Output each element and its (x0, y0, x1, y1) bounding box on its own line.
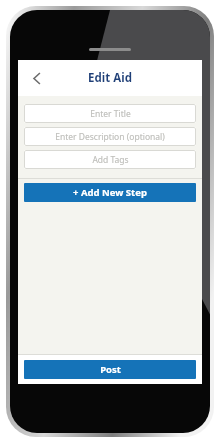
button[interactable]: Back (24, 65, 50, 91)
staticText: Enter Description (optional) (55, 131, 165, 143)
staticText: Edit Aid (88, 70, 132, 86)
button[interactable]: Post (24, 360, 196, 379)
staticText: Add Tags (92, 154, 129, 166)
button[interactable]: Add Tags (24, 150, 196, 169)
staticText: Post (100, 363, 121, 376)
button[interactable]: + Add New Step (24, 183, 196, 202)
staticText: Enter Title (90, 108, 131, 120)
button[interactable]: Enter Description (optional) (24, 127, 196, 146)
button[interactable]: Enter Title (24, 104, 196, 123)
staticText: + Add New Step (73, 186, 147, 199)
